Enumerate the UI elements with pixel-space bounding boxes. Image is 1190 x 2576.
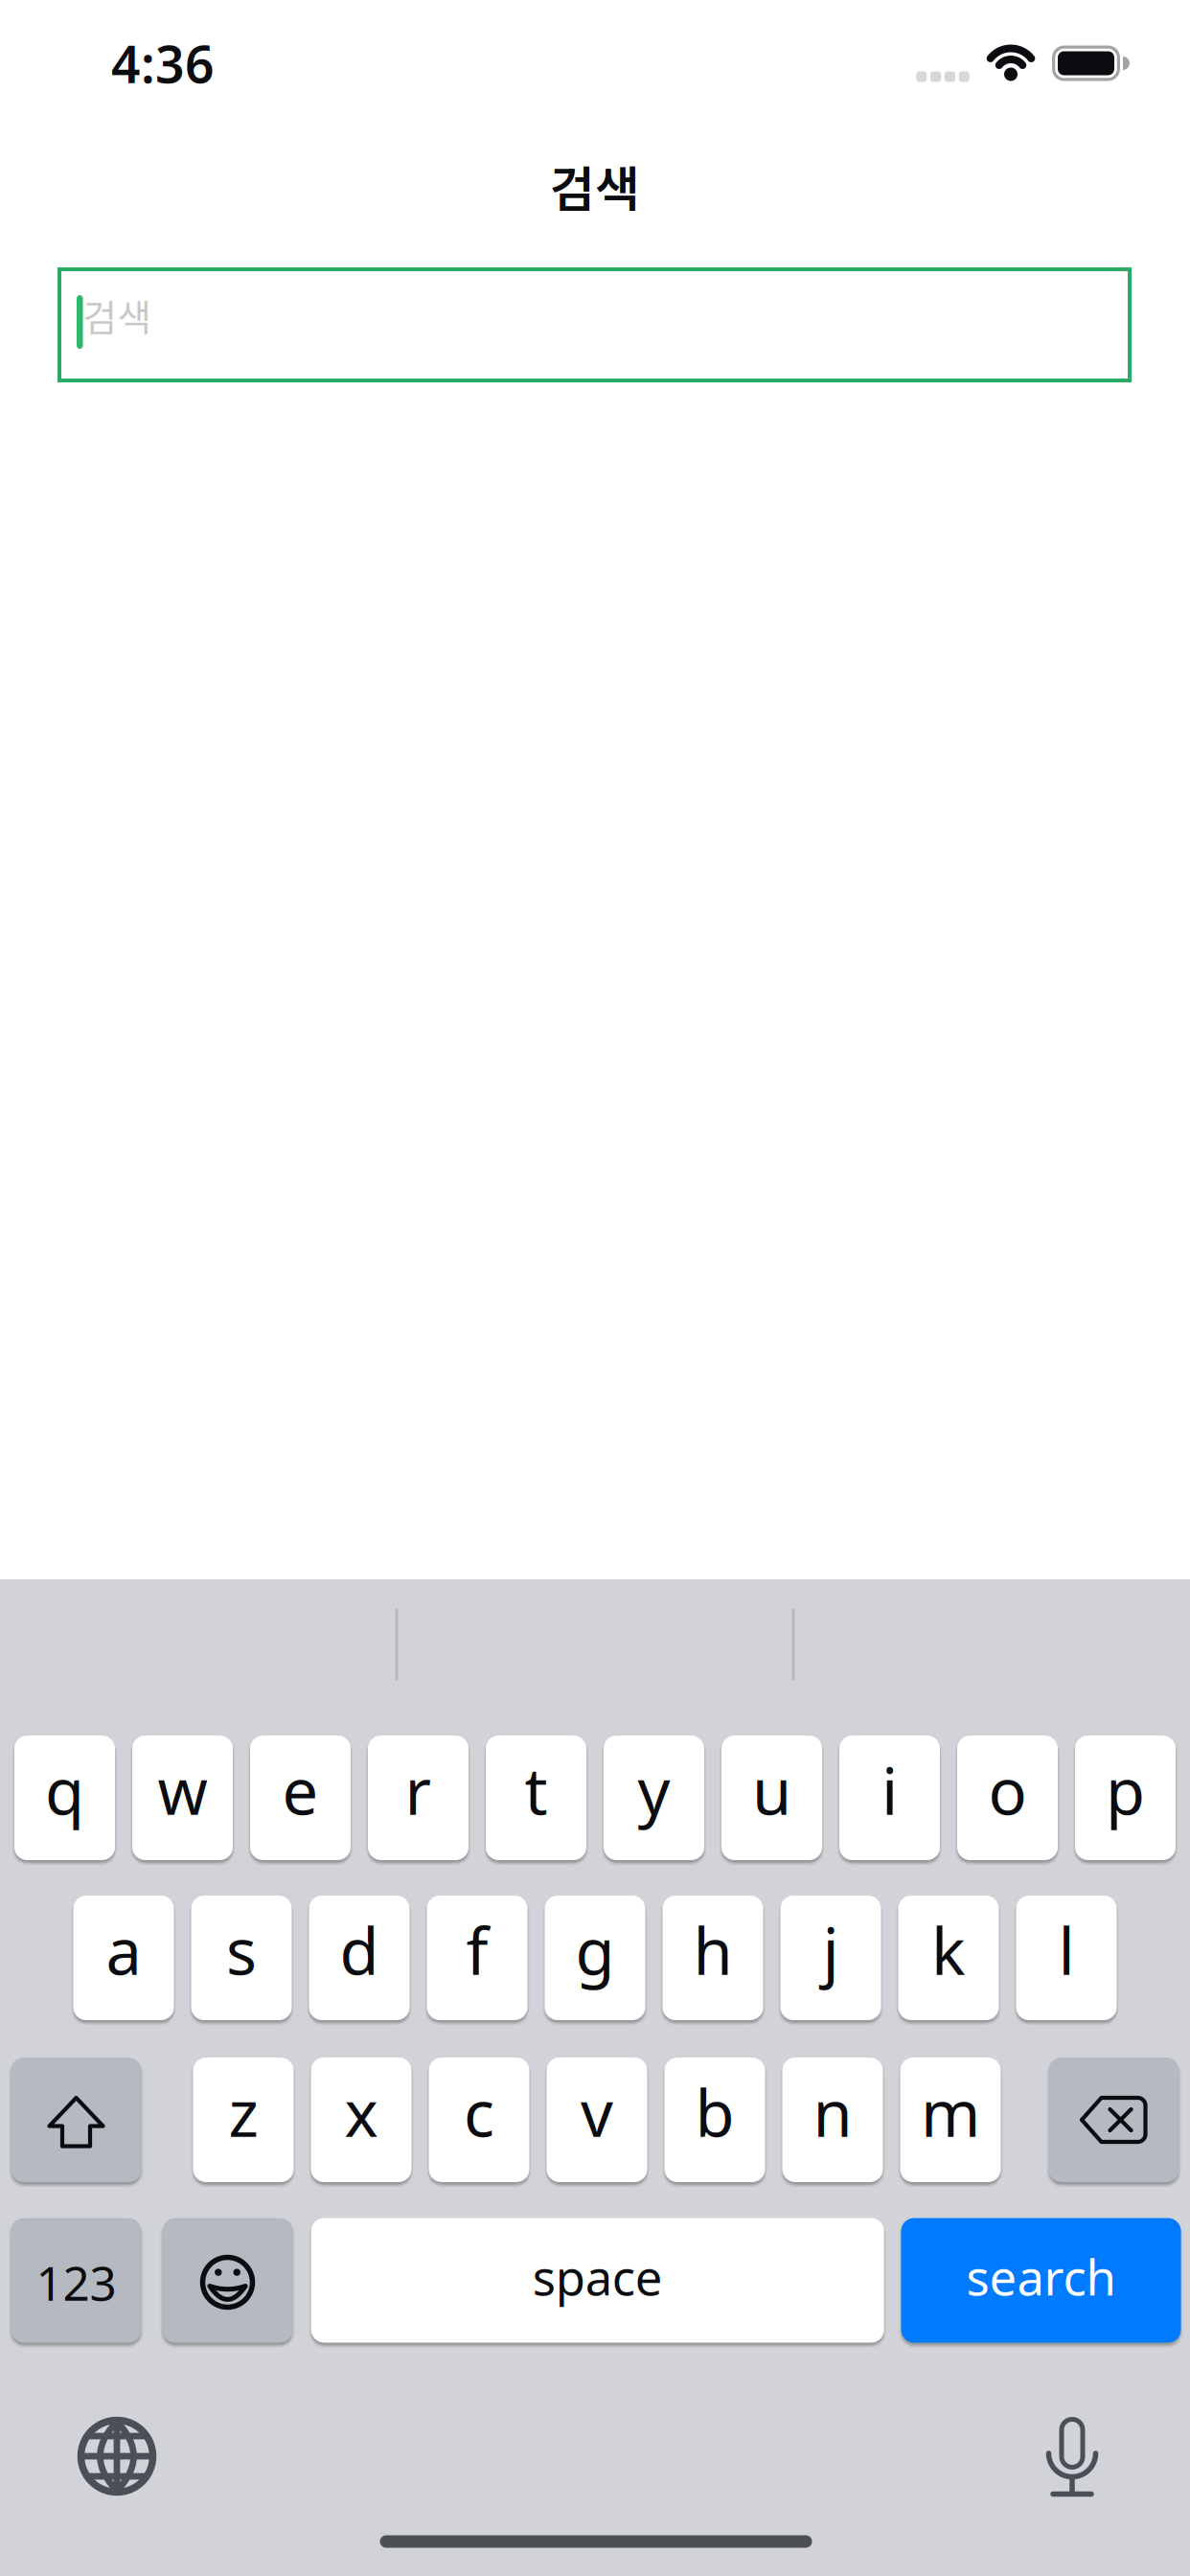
staticText: search <box>966 2244 1116 2309</box>
staticText: d <box>340 1908 379 1993</box>
staticText: f <box>466 1908 488 1993</box>
button[interactable]: m <box>900 2058 1001 2182</box>
button[interactable]: n <box>782 2058 883 2182</box>
button[interactable]: space <box>311 2218 884 2343</box>
staticText: z <box>229 2070 258 2155</box>
button[interactable]: e <box>250 1736 351 1860</box>
button[interactable]: q <box>14 1736 115 1860</box>
button[interactable]: i <box>839 1736 940 1860</box>
staticText: o <box>988 1748 1027 1833</box>
staticText: 검색 <box>550 151 640 221</box>
staticText: a <box>106 1908 141 1993</box>
staticText: t <box>525 1748 548 1833</box>
staticText: s <box>226 1908 257 1993</box>
staticText: j <box>823 1908 839 1993</box>
staticText: e <box>282 1748 319 1833</box>
staticText: m <box>921 2070 980 2155</box>
button[interactable]: p <box>1075 1736 1176 1860</box>
button[interactable]: z <box>193 2058 294 2182</box>
button[interactable]: k <box>898 1896 999 2020</box>
staticText: 4:36 <box>111 29 215 97</box>
button[interactable]: a <box>73 1896 174 2020</box>
staticText: u <box>752 1748 791 1833</box>
staticText: space <box>532 2244 663 2309</box>
staticText: p <box>1106 1748 1145 1833</box>
button[interactable]: d <box>309 1896 410 2020</box>
staticText: h <box>693 1908 732 1993</box>
button[interactable]: Next keyboard <box>75 2414 159 2498</box>
button[interactable]: b <box>664 2058 765 2182</box>
button[interactable]: r <box>368 1736 469 1860</box>
button[interactable]: t <box>486 1736 586 1860</box>
button[interactable]: y <box>604 1736 704 1860</box>
button[interactable]: search <box>901 2218 1181 2343</box>
staticText: w <box>158 1748 207 1833</box>
button[interactable]: 123 <box>11 2218 141 2343</box>
button[interactable]: Emoji <box>162 2218 293 2343</box>
staticText: g <box>575 1908 615 1993</box>
button[interactable]: s <box>191 1896 292 2020</box>
button[interactable]: Delete <box>1049 2058 1179 2182</box>
button[interactable]: Dictation <box>1043 2414 1101 2498</box>
button[interactable]: c <box>429 2058 529 2182</box>
staticText: i <box>881 1748 898 1833</box>
button[interactable]: g <box>545 1896 645 2020</box>
button[interactable]: v <box>547 2058 647 2182</box>
button[interactable]: h <box>663 1896 763 2020</box>
button[interactable]: o <box>957 1736 1058 1860</box>
button[interactable]: 검색 <box>57 267 1132 382</box>
staticText: r <box>405 1748 432 1833</box>
staticText: b <box>695 2070 734 2155</box>
staticText: x <box>344 2070 378 2155</box>
staticText: k <box>931 1908 966 1993</box>
staticText: n <box>813 2070 852 2155</box>
button[interactable]: x <box>311 2058 412 2182</box>
staticText: q <box>45 1748 84 1833</box>
staticText: v <box>581 2070 613 2155</box>
button[interactable]: j <box>780 1896 881 2020</box>
button[interactable]: w <box>132 1736 233 1860</box>
staticText: l <box>1058 1908 1075 1993</box>
button[interactable]: Shift <box>11 2058 141 2182</box>
staticText: 123 <box>36 2251 116 2314</box>
button[interactable]: u <box>721 1736 822 1860</box>
staticText: y <box>638 1748 670 1833</box>
button[interactable]: l <box>1016 1896 1117 2020</box>
staticText: 검색 <box>83 288 152 342</box>
button[interactable]: f <box>427 1896 527 2020</box>
staticText: c <box>464 2070 494 2155</box>
